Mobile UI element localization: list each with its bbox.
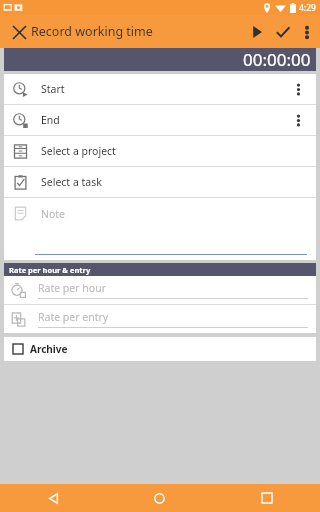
- staticText: Select a project: [41, 144, 116, 158]
- staticText: Archive: [30, 342, 68, 356]
- staticText: End: [41, 113, 60, 127]
- button[interactable]: Home: [106, 484, 213, 512]
- button[interactable]: Rate per entry: [4, 305, 316, 333]
- button[interactable]: End options: [285, 107, 311, 133]
- button[interactable]: Back: [0, 484, 106, 512]
- button[interactable]: Select a project: [4, 136, 316, 166]
- button[interactable]: Start: [244, 19, 270, 45]
- button[interactable]: More options: [296, 21, 318, 43]
- button[interactable]: Start: [4, 74, 316, 104]
- button[interactable]: Start options: [285, 76, 311, 102]
- button[interactable]: Save: [270, 19, 296, 45]
- staticText: 00:00:00: [243, 48, 311, 71]
- button[interactable]: End: [4, 105, 316, 135]
- button[interactable]: Rate per hour: [4, 276, 316, 304]
- button[interactable]: Recents: [213, 484, 320, 512]
- staticText: Rate per entry: [38, 310, 109, 324]
- button[interactable]: Close: [6, 19, 32, 45]
- staticText: 4:29: [299, 2, 316, 14]
- staticText: Select a task: [41, 175, 102, 189]
- staticText: Rate per hour: [38, 281, 106, 295]
- staticText: Note: [41, 207, 66, 221]
- button[interactable]: Note: [4, 198, 316, 260]
- staticText: Rate per hour & entry: [9, 265, 91, 275]
- staticText: Start: [41, 82, 65, 96]
- button[interactable]: Select a task: [4, 167, 316, 197]
- button[interactable]: Archive: [4, 337, 316, 361]
- staticText: Record working time: [31, 23, 153, 40]
